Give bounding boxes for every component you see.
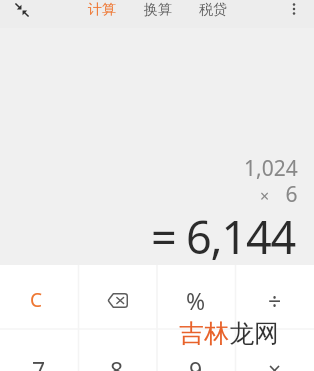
staticText: ÷ bbox=[268, 285, 282, 316]
staticText: C bbox=[30, 287, 43, 313]
staticText: 1,024 bbox=[244, 154, 298, 183]
button[interactable]: 税贷 bbox=[198, 0, 228, 22]
staticText: = 6,144 bbox=[151, 206, 296, 267]
other: Backspace bbox=[107, 293, 128, 308]
button[interactable]: Collapse bbox=[8, 0, 35, 22]
button[interactable]: 8 bbox=[78, 330, 156, 371]
button[interactable]: ÷ bbox=[235, 265, 314, 329]
staticText: 税贷 bbox=[199, 1, 227, 19]
button[interactable]: More options bbox=[282, 0, 306, 21]
staticText: 换算 bbox=[144, 1, 172, 19]
button[interactable]: 换算 bbox=[143, 0, 173, 22]
button[interactable]: Backspace bbox=[78, 265, 156, 329]
button[interactable]: C bbox=[0, 265, 78, 329]
staticText: % bbox=[186, 285, 206, 316]
staticText: 9 bbox=[189, 354, 203, 371]
staticText: 吉林龙网 bbox=[179, 318, 279, 349]
staticText: 8 bbox=[110, 354, 124, 371]
button[interactable]: × bbox=[235, 330, 314, 371]
button[interactable]: 7 bbox=[0, 330, 78, 371]
staticText: × bbox=[268, 354, 282, 371]
staticText: 7 bbox=[32, 354, 46, 371]
staticText: 计算 bbox=[88, 1, 116, 19]
button[interactable]: 9 bbox=[156, 330, 235, 371]
button[interactable]: % bbox=[156, 265, 235, 329]
button[interactable]: 计算 bbox=[87, 0, 117, 22]
staticText: × 6 bbox=[260, 180, 298, 209]
